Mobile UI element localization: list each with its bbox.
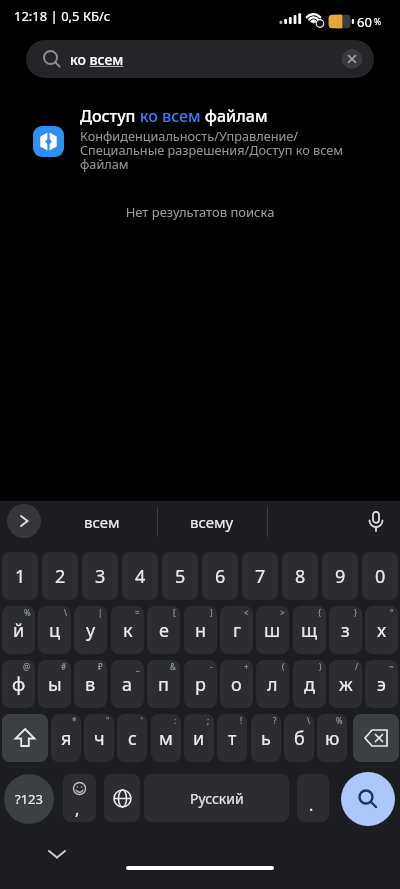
staticText: 7: [255, 564, 266, 589]
staticText: *: [72, 715, 77, 726]
staticText: р: [195, 672, 206, 697]
staticText: ": [106, 715, 110, 726]
staticText: э: [377, 672, 386, 697]
button[interactable]: к: [111, 606, 144, 654]
staticText: 9: [335, 564, 346, 589]
button[interactable]: т: [217, 714, 247, 762]
staticText: :: [174, 715, 177, 726]
staticText: %: [24, 607, 31, 618]
button[interactable]: 6: [202, 552, 238, 600]
staticText: Конфиденциальность/Управление/ Специальн…: [80, 127, 343, 173]
button[interactable]: э: [365, 660, 398, 708]
staticText: +: [244, 661, 249, 672]
button[interactable]: з: [329, 606, 362, 654]
staticText: 8: [295, 564, 306, 589]
button[interactable]: [7, 504, 41, 538]
button[interactable]: 9: [322, 552, 358, 600]
staticText: \: [64, 607, 67, 618]
staticText: у: [86, 618, 96, 643]
button[interactable]: [356, 501, 396, 543]
button[interactable]: .: [297, 774, 329, 822]
button[interactable]: всему: [158, 501, 266, 543]
button[interactable]: 8: [282, 552, 318, 600]
staticText: |: [98, 607, 103, 618]
button[interactable]: ш: [256, 606, 289, 654]
button[interactable]: н: [184, 606, 217, 654]
staticText: \: [307, 715, 310, 726]
button[interactable]: ю: [317, 714, 347, 762]
staticText: с: [128, 726, 137, 751]
staticText: Нет результатов поиска: [0, 203, 400, 221]
staticText: _: [136, 661, 140, 672]
staticText: д: [304, 672, 315, 697]
button[interactable]: ь: [251, 714, 281, 762]
staticText: ₽: [98, 661, 103, 672]
button[interactable]: 5: [162, 552, 198, 600]
staticText: н: [195, 618, 207, 643]
staticText: ': [141, 715, 143, 726]
staticText: Русский: [190, 789, 244, 808]
staticText: ~: [389, 661, 394, 672]
button[interactable]: г: [220, 606, 253, 654]
staticText: ф: [12, 672, 26, 697]
staticText: п: [158, 672, 169, 697]
staticText: ,: [75, 798, 80, 820]
button[interactable]: п: [147, 660, 180, 708]
staticText: #: [61, 661, 67, 672]
staticText: к: [123, 618, 133, 643]
button[interactable]: ?123: [4, 774, 54, 824]
button[interactable]: м: [151, 714, 181, 762]
button[interactable]: Доступ ко всем файлам: [0, 100, 400, 180]
staticText: ы: [48, 672, 62, 697]
button[interactable]: 1: [2, 552, 38, 600]
button[interactable]: ф: [2, 660, 35, 708]
button[interactable]: е: [147, 606, 180, 654]
staticText: 1: [15, 564, 26, 589]
button[interactable]: ч: [84, 714, 114, 762]
button[interactable]: 7: [242, 552, 278, 600]
button[interactable]: я: [51, 714, 81, 762]
button[interactable]: д: [293, 660, 326, 708]
staticText: /: [355, 661, 358, 672]
staticText: 4: [135, 564, 146, 589]
button[interactable]: 0: [362, 552, 398, 600]
button[interactable]: р: [184, 660, 217, 708]
staticText: ;: [207, 715, 210, 726]
button[interactable]: всем: [48, 501, 156, 543]
staticText: ]: [210, 607, 213, 618]
button[interactable]: 2: [42, 552, 78, 600]
staticText: >: [280, 607, 285, 618]
button[interactable]: у: [74, 606, 107, 654]
button[interactable]: ,: [63, 774, 96, 822]
button[interactable]: [104, 774, 140, 822]
button[interactable]: й: [2, 606, 35, 654]
button[interactable]: ж: [329, 660, 362, 708]
button[interactable]: х: [365, 606, 398, 654]
staticText: 60: [357, 13, 372, 31]
staticText: }: [354, 607, 358, 618]
button[interactable]: ц: [38, 606, 71, 654]
button[interactable]: [341, 772, 395, 826]
button[interactable]: 4: [122, 552, 158, 600]
staticText: ц: [49, 618, 61, 643]
button[interactable]: и: [184, 714, 214, 762]
button[interactable]: ко всем: [26, 40, 374, 78]
button[interactable]: ы: [38, 660, 71, 708]
staticText: з: [341, 618, 350, 643]
button[interactable]: б: [284, 714, 314, 762]
button[interactable]: в: [74, 660, 107, 708]
button[interactable]: с: [117, 714, 147, 762]
button[interactable]: [353, 714, 399, 762]
button[interactable]: 3: [82, 552, 118, 600]
button[interactable]: [342, 49, 362, 69]
button[interactable]: щ: [293, 606, 326, 654]
button[interactable]: о: [220, 660, 253, 708]
staticText: х: [377, 618, 387, 643]
staticText: ?: [273, 715, 277, 726]
button[interactable]: [2, 714, 48, 762]
button[interactable]: Русский: [144, 774, 289, 822]
staticText: %: [336, 715, 343, 726]
button[interactable]: л: [256, 660, 289, 708]
staticText: Доступ ко всем файлам: [80, 105, 268, 127]
button[interactable]: а: [111, 660, 144, 708]
